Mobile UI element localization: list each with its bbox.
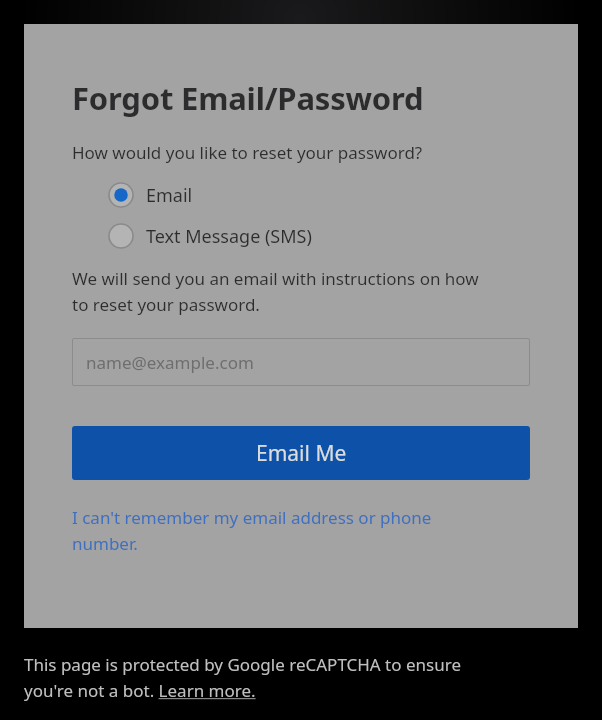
staticText: I can't remember my email address or pho…: [72, 506, 432, 555]
staticText: Email: [146, 183, 193, 208]
button[interactable]: Text Message (SMS): [108, 221, 312, 251]
staticText: How would you like to reset your passwor…: [72, 141, 423, 164]
staticText: This page is protected by Google reCAPTC…: [24, 653, 461, 702]
staticText: We will send you an email with instructi…: [72, 267, 479, 316]
staticText: name@example.com: [86, 351, 254, 374]
staticText: Text Message (SMS): [146, 224, 312, 249]
staticText: Forgot Email/Password: [72, 77, 424, 119]
button[interactable]: name@example.com: [72, 338, 530, 386]
button[interactable]: I can't remember my email address or pho…: [72, 506, 472, 555]
button[interactable]: Email: [108, 180, 193, 210]
button[interactable]: Email Me: [72, 426, 530, 480]
staticText: Email Me: [256, 439, 347, 468]
